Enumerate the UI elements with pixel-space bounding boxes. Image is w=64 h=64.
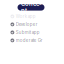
button[interactable]: Work app [7, 12, 57, 20]
staticText: Concept [21, 0, 41, 14]
button[interactable]: Concept [17, 4, 44, 11]
staticText: Submit app [16, 30, 40, 35]
button[interactable]: Submit app [7, 28, 57, 36]
staticText: Work app [16, 14, 36, 19]
button[interactable]: Developer [7, 20, 57, 28]
staticText: Developer [16, 22, 38, 27]
staticText: moderate Gr [16, 38, 43, 43]
button[interactable]: moderate Gr [7, 36, 57, 44]
